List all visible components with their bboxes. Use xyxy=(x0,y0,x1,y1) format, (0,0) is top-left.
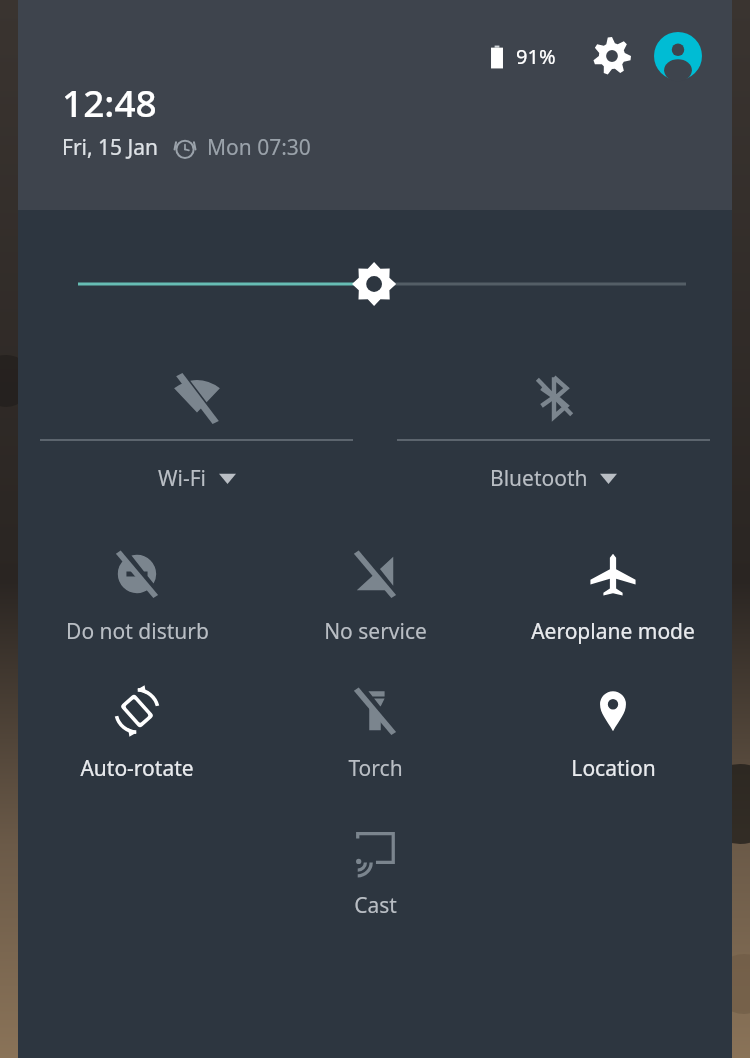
staticText: Mon 07:30 xyxy=(207,133,311,162)
button[interactable]: Auto-rotate xyxy=(18,682,256,783)
staticText: Do not disturb xyxy=(66,617,209,646)
button[interactable]: Wi-Fi xyxy=(18,366,375,493)
button[interactable]: Brightness xyxy=(18,246,732,322)
button[interactable]: Settings xyxy=(586,30,638,82)
button[interactable]: 12:48 xyxy=(62,77,157,127)
staticText: 91% xyxy=(516,43,556,70)
staticText: Wi-Fi xyxy=(158,464,207,493)
staticText: Cast xyxy=(354,891,397,920)
staticText: Torch xyxy=(348,754,403,783)
button[interactable]: No service xyxy=(256,545,494,646)
button[interactable]: Bluetooth xyxy=(375,366,732,493)
button[interactable]: Torch xyxy=(256,682,494,783)
button[interactable]: Cast xyxy=(256,819,494,920)
staticText: Bluetooth xyxy=(490,464,588,493)
button[interactable]: Do not disturb xyxy=(18,545,256,646)
staticText: Fri, 15 Jan xyxy=(62,133,159,162)
staticText: No service xyxy=(324,617,427,646)
button[interactable]: Fri, 15 Jan xyxy=(62,133,311,162)
button[interactable]: Aeroplane mode xyxy=(494,545,732,646)
staticText: Auto-rotate xyxy=(80,754,194,783)
button[interactable]: Location xyxy=(494,682,732,783)
staticText: Aeroplane mode xyxy=(531,617,695,646)
button[interactable]: User account xyxy=(652,30,704,82)
staticText: Location xyxy=(571,754,656,783)
